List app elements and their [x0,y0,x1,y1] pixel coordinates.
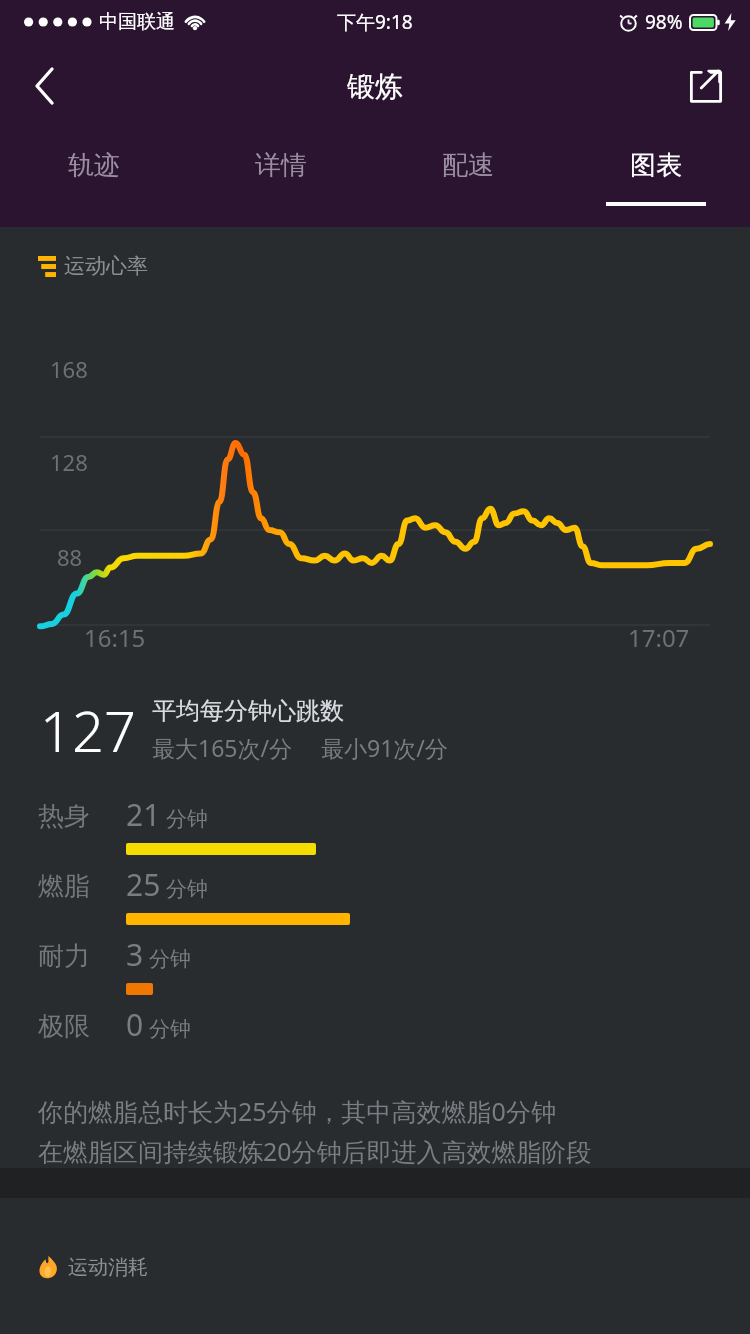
staticText: 运动心率 [64,253,148,279]
staticText: 88 [57,542,83,572]
staticText: 图表 [630,149,682,182]
staticText: 轨迹 [68,149,120,182]
staticText: 耐力 [38,940,90,973]
button[interactable]: 详情 [187,128,374,227]
staticText: 燃脂 [38,870,90,903]
staticText: 17:07 [628,621,690,654]
staticText: 极限 [38,1010,90,1043]
staticText: 98% [645,9,683,35]
staticText: 详情 [255,149,307,182]
staticText: 168 [50,354,88,384]
staticText: 3 [126,934,144,975]
staticText: 分钟 [166,876,208,902]
staticText: 下午9:18 [337,9,413,35]
button[interactable]: 轨迹 [0,128,187,227]
staticText: 分钟 [149,1016,191,1042]
staticText: 最小91次/分 [321,732,448,763]
button[interactable]: 配速 [374,128,562,227]
staticText: 分钟 [166,806,208,832]
button[interactable]: Share [662,44,750,128]
staticText: 最大165次/分 [152,732,293,763]
staticText: 平均每分钟心跳数 [152,696,344,726]
staticText: 21 [126,794,161,835]
button[interactable]: 图表 [562,128,750,227]
staticText: 在燃脂区间持续锻炼20分钟后即进入高效燃脂阶段 [38,1134,592,1168]
staticText: 127 [40,692,136,768]
staticText: 128 [50,447,88,477]
staticText: 热身 [38,800,90,833]
button[interactable]: Back [0,44,90,128]
staticText: 0 [126,1004,144,1045]
staticText: 25 [126,864,161,905]
staticText: 锻炼 [347,69,403,104]
staticText: 配速 [442,149,494,182]
staticText: 16:15 [84,621,146,654]
staticText: 运动消耗 [68,1255,148,1280]
staticText: 分钟 [149,946,191,972]
staticText: 中国联通 [99,10,175,34]
staticText: 你的燃脂总时长为25分钟，其中高效燃脂0分钟 [38,1094,556,1128]
